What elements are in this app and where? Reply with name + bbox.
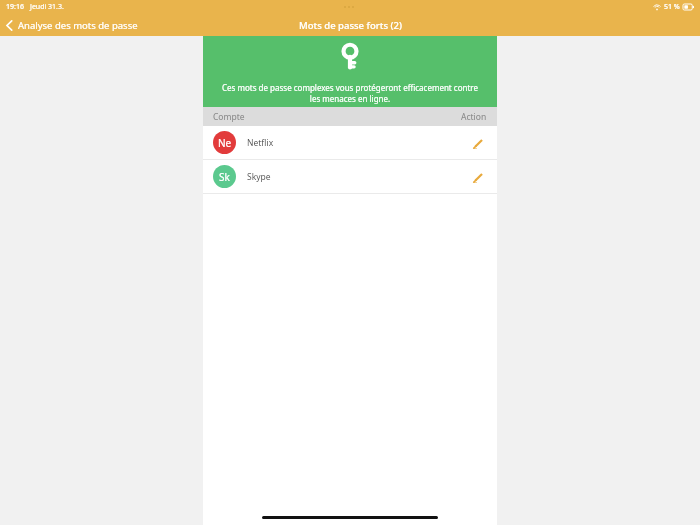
button[interactable]: Sk — [203, 160, 497, 193]
staticText: Sk — [219, 170, 230, 184]
staticText: Mots de passe forts (2) — [299, 19, 402, 32]
staticText: Compte — [213, 111, 245, 123]
staticText: Jeudi 31.3. — [30, 2, 64, 12]
staticText: Ne — [218, 136, 232, 150]
button[interactable]: Modifier — [469, 168, 487, 186]
button[interactable]: Modifier — [469, 134, 487, 152]
staticText: Analyse des mots de passe — [18, 19, 138, 32]
staticText: 19:16 — [6, 2, 24, 12]
button[interactable]: Analyse des mots de passe — [0, 16, 146, 35]
staticText: Netflix — [247, 137, 274, 149]
button[interactable]: Ne — [203, 126, 497, 159]
staticText: Ces mots de passe complexes vous protége… — [221, 82, 479, 104]
staticText: 51 % — [664, 2, 680, 12]
staticText: Action — [461, 111, 487, 123]
staticText: Skype — [247, 171, 271, 183]
